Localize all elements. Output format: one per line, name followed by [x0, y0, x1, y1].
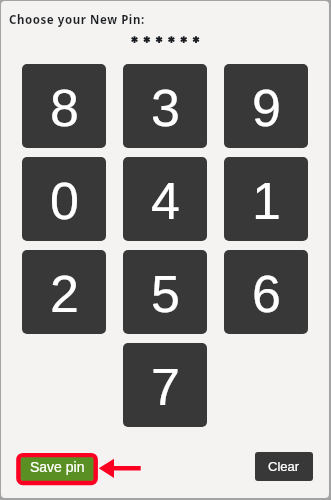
- button[interactable]: 4: [123, 157, 207, 241]
- staticText: 8: [50, 79, 79, 137]
- staticText: 3: [151, 79, 180, 137]
- staticText: 7: [151, 358, 180, 416]
- button[interactable]: 3: [123, 64, 207, 148]
- button[interactable]: 0: [22, 157, 106, 241]
- staticText: 9: [252, 79, 281, 137]
- staticText: Clear: [268, 459, 300, 474]
- staticText: 2: [50, 265, 79, 323]
- staticText: 4: [151, 172, 180, 230]
- button[interactable]: 2: [22, 250, 106, 334]
- button[interactable]: Save pin: [20, 457, 94, 481]
- button[interactable]: Clear: [255, 452, 313, 481]
- button[interactable]: 7: [123, 343, 207, 427]
- button[interactable]: 8: [22, 64, 106, 148]
- staticText: 5: [151, 265, 180, 323]
- staticText: Save pin: [30, 459, 85, 475]
- button[interactable]: 9: [224, 64, 308, 148]
- button[interactable]: 1: [224, 157, 308, 241]
- other: Entered pin, six digits: [129, 32, 205, 48]
- button[interactable]: 5: [123, 250, 207, 334]
- button[interactable]: 6: [224, 250, 308, 334]
- staticText: Choose your New Pin:: [9, 12, 145, 28]
- staticText: 6: [252, 265, 281, 323]
- staticText: 1: [252, 172, 281, 230]
- staticText: 0: [50, 172, 79, 230]
